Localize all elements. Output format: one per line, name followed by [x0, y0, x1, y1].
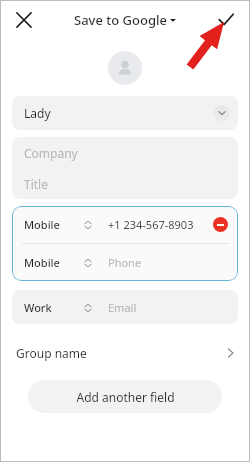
- staticText: Add another field: [76, 389, 175, 405]
- staticText: Work: [24, 300, 52, 315]
- staticText: Mobile: [24, 217, 60, 232]
- button[interactable]: Title: [12, 168, 238, 199]
- button[interactable]: Remove phone number: [213, 217, 228, 232]
- button[interactable]: Close: [8, 4, 40, 36]
- button[interactable]: Mobile: [12, 206, 238, 243]
- staticText: +1 234-567-8903: [108, 217, 194, 232]
- button[interactable]: Add photo: [108, 51, 142, 85]
- button[interactable]: Company: [12, 137, 238, 168]
- button[interactable]: Expand name fields: [214, 105, 230, 121]
- staticText: Email: [108, 300, 137, 315]
- button[interactable]: Save: [210, 4, 242, 36]
- button[interactable]: Save to Google: [74, 11, 176, 29]
- button[interactable]: Group name: [0, 338, 250, 368]
- staticText: Mobile: [24, 255, 60, 270]
- staticText: Lady: [24, 105, 51, 121]
- button[interactable]: Work: [12, 290, 238, 324]
- staticText: Company: [24, 145, 78, 161]
- staticText: Phone: [108, 255, 142, 270]
- staticText: Group name: [16, 345, 87, 361]
- staticText: Title: [24, 176, 48, 192]
- staticText: Save to Google: [74, 11, 167, 29]
- button[interactable]: Lady: [12, 96, 238, 130]
- button[interactable]: Mobile: [12, 244, 238, 281]
- button[interactable]: Add another field: [28, 380, 222, 413]
